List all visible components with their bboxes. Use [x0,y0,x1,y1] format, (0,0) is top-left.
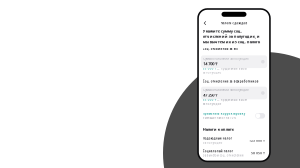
button[interactable]: Очистить [261,91,265,95]
staticText: 35 000 ₸ [203,67,216,70]
staticText: Соц. отчисления за ИП [203,47,238,51]
staticText: Сумма отчислений за полугодие [203,88,248,92]
staticText: — предельный вычет [217,67,247,70]
staticText: Применить корректировку [203,112,245,115]
staticText: 58 050 ₸ [251,151,265,155]
staticText: Уменьшит налог на 10% [203,116,236,120]
staticText: 35 000 ₸ [203,98,216,102]
staticText: За полугодие [203,141,222,144]
staticText: 123 000 ₸ [249,139,265,142]
staticText: Социальный налог [203,149,233,153]
staticText: Соц. отчисления за всех работников [203,80,259,83]
staticText: Налоги с доходов [220,21,247,25]
staticText: За вычетом соц. отчислений [203,154,244,157]
staticText: за полугодие [203,102,221,106]
staticText: Налоги к оплате [203,127,234,132]
button[interactable]: Применить корректировку [203,111,265,120]
staticText: 47 250 ₸ [203,92,217,98]
staticText: — предельный вычет [217,98,247,102]
button[interactable]: Очистить [261,60,265,63]
staticText: за полугодие [203,71,221,74]
staticText: Укажите сумму соц. отчислений за полугод… [203,28,260,44]
staticText: 14 700 ₸ [203,61,217,66]
staticText: Подоходный налог [203,137,232,140]
button[interactable]: Назад [202,19,209,27]
staticText: Сумма отчислений за полугодие [203,57,248,60]
